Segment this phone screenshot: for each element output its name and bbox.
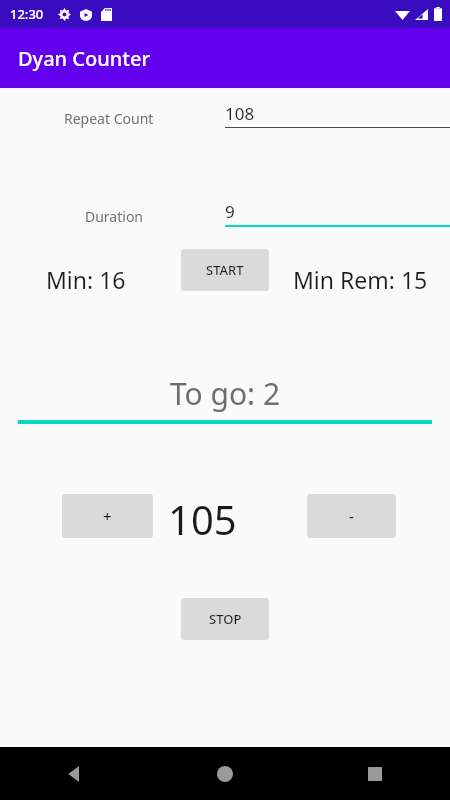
staticText: 9 <box>225 200 235 223</box>
staticText: START <box>206 261 244 279</box>
staticText: STOP <box>209 610 242 628</box>
button[interactable]: STOP <box>181 598 269 640</box>
staticText: Dyan Counter <box>18 45 150 72</box>
button[interactable]: Decrement <box>307 494 396 538</box>
button[interactable]: START <box>181 249 269 291</box>
button[interactable]: 9 <box>225 198 450 221</box>
staticText: + <box>103 506 112 526</box>
staticText: 108 <box>225 102 255 125</box>
button[interactable]: Back <box>0 747 150 800</box>
staticText: Min: 16 <box>46 264 126 295</box>
staticText: 12:30 <box>10 5 44 23</box>
staticText: Repeat Count <box>64 109 154 128</box>
button[interactable]: Home <box>150 747 300 800</box>
button[interactable]: 108 <box>225 100 450 123</box>
staticText: To go: 2 <box>0 373 450 414</box>
staticText: Min Rem: 15 <box>293 264 428 295</box>
button[interactable]: Increment <box>62 494 153 538</box>
button[interactable]: Recents <box>300 747 450 800</box>
staticText: - <box>349 506 354 526</box>
staticText: Duration <box>85 207 144 226</box>
staticText: 105 <box>168 492 237 546</box>
